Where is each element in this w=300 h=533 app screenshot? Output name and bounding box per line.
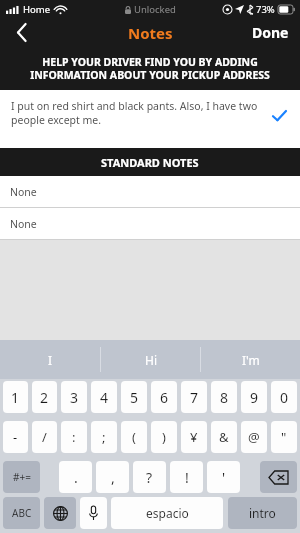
staticText: ? <box>146 468 153 487</box>
staticText: espacio <box>146 505 189 521</box>
button[interactable]: , <box>96 461 129 493</box>
button[interactable]: intro <box>228 497 297 529</box>
staticText: - <box>13 428 18 446</box>
staticText: 73% <box>256 3 275 16</box>
staticText: 4 <box>100 388 109 407</box>
button[interactable]: 5 <box>121 381 147 413</box>
button[interactable]: espacio <box>111 497 223 529</box>
button[interactable]: ! <box>170 461 203 493</box>
staticText: Home <box>23 3 51 16</box>
staticText: I <box>48 352 53 368</box>
button[interactable]: ? <box>133 461 166 493</box>
staticText: 1 <box>11 388 20 407</box>
button[interactable]: ; <box>91 421 117 453</box>
button[interactable]: ( <box>121 421 147 453</box>
staticText: I'm <box>242 352 260 368</box>
button[interactable]: Delete <box>260 461 297 493</box>
staticText: intro <box>249 505 276 521</box>
button[interactable]: " <box>271 421 297 453</box>
staticText: I put on red shirt and black pants. Also… <box>11 99 266 127</box>
button[interactable]: 2 <box>32 381 57 413</box>
staticText: ) <box>162 428 166 446</box>
button[interactable]: / <box>32 421 57 453</box>
button[interactable]: I <box>0 340 100 379</box>
button[interactable]: 6 <box>151 381 177 413</box>
staticText: @ <box>248 428 260 446</box>
staticText: " <box>281 428 287 446</box>
staticText: 8 <box>220 388 229 407</box>
staticText: Notes <box>128 23 173 43</box>
button[interactable]: : <box>61 421 87 453</box>
staticText: ABC <box>12 506 32 520</box>
staticText: 2 <box>40 388 49 407</box>
staticText: : <box>72 428 76 446</box>
staticText: . <box>74 468 78 487</box>
staticText: ! <box>185 468 189 487</box>
staticText: STANDARD NOTES <box>101 155 199 170</box>
staticText: & <box>219 428 229 446</box>
button[interactable]: Change keyboard language <box>44 497 76 529</box>
button[interactable]: ' <box>207 461 240 493</box>
staticText: 7 <box>190 388 199 407</box>
button[interactable]: @ <box>241 421 267 453</box>
button[interactable]: 7 <box>181 381 207 413</box>
staticText: 6 <box>160 388 169 407</box>
staticText: #+= <box>13 470 31 484</box>
staticText: 9 <box>250 388 259 407</box>
button[interactable]: 1 <box>3 381 28 413</box>
staticText: Done <box>252 23 289 42</box>
button[interactable]: ) <box>151 421 177 453</box>
staticText: 3 <box>70 388 79 407</box>
button[interactable]: - <box>3 421 28 453</box>
staticText: ; <box>102 428 106 446</box>
button[interactable]: ABC <box>3 497 40 529</box>
button[interactable]: Back <box>0 18 44 47</box>
button[interactable]: 8 <box>211 381 237 413</box>
button[interactable]: . <box>59 461 92 493</box>
staticText: ¥ <box>190 428 198 446</box>
staticText: ( <box>132 428 136 446</box>
button[interactable]: 4 <box>91 381 117 413</box>
staticText: , <box>111 468 115 487</box>
button[interactable]: 0 <box>271 381 297 413</box>
button[interactable]: #+= <box>3 461 40 493</box>
button[interactable]: & <box>211 421 237 453</box>
staticText: Unlocked <box>134 3 176 16</box>
button[interactable]: Hi <box>101 340 200 379</box>
staticText: ' <box>222 468 226 487</box>
staticText: HELP YOUR DRIVER FIND YOU BY ADDING INFO… <box>18 55 282 82</box>
button[interactable]: None <box>0 208 300 239</box>
staticText: 0 <box>280 388 289 407</box>
button[interactable]: ¥ <box>181 421 207 453</box>
button[interactable]: 3 <box>61 381 87 413</box>
staticText: None <box>10 185 37 199</box>
button[interactable]: None <box>0 176 300 207</box>
staticText: 5 <box>130 388 139 407</box>
staticText: None <box>10 217 37 231</box>
staticText: Hi <box>145 352 157 368</box>
button[interactable]: Done <box>241 18 300 47</box>
button[interactable]: 9 <box>241 381 267 413</box>
staticText: / <box>42 428 47 446</box>
button[interactable]: Dictate <box>80 497 107 529</box>
button[interactable]: I'm <box>201 340 300 379</box>
